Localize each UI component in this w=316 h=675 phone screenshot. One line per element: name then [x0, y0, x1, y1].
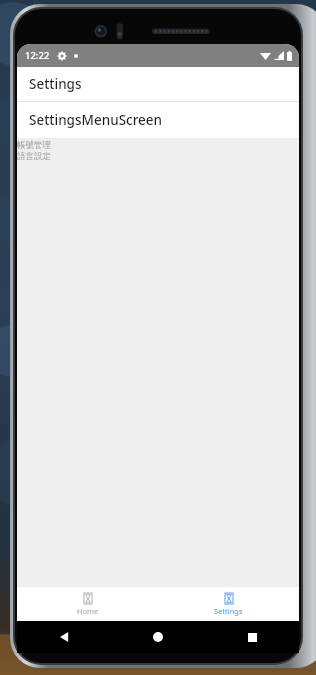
staticText: Settings — [29, 75, 82, 93]
button[interactable]: Settings — [158, 587, 299, 621]
button[interactable]: Home — [147, 626, 169, 648]
button[interactable]: 帳號管理 — [17, 140, 299, 151]
staticText: Home — [77, 606, 99, 616]
staticText: SettingsMenuScreen — [29, 111, 163, 129]
button[interactable]: Recents — [241, 626, 263, 648]
button[interactable]: 語言設定 — [17, 151, 299, 162]
staticText: 帳號管理 — [17, 140, 51, 151]
button[interactable]: Settings — [17, 67, 299, 101]
staticText: 12:22 — [25, 49, 50, 62]
staticText: Settings — [214, 606, 243, 616]
button[interactable]: Home — [17, 587, 158, 621]
button[interactable]: Back — [53, 626, 75, 648]
staticText: 語言設定 — [17, 151, 51, 162]
